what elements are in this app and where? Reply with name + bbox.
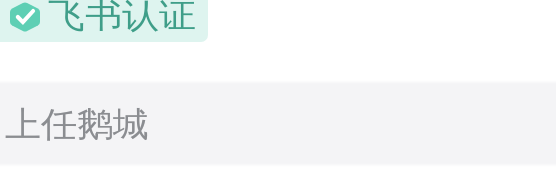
other: 已认证 [10, 2, 40, 32]
button[interactable]: 已认证 [0, 0, 208, 42]
staticText: 上任鹅城 [5, 103, 149, 146]
staticText: 飞书认证 [48, 0, 196, 37]
